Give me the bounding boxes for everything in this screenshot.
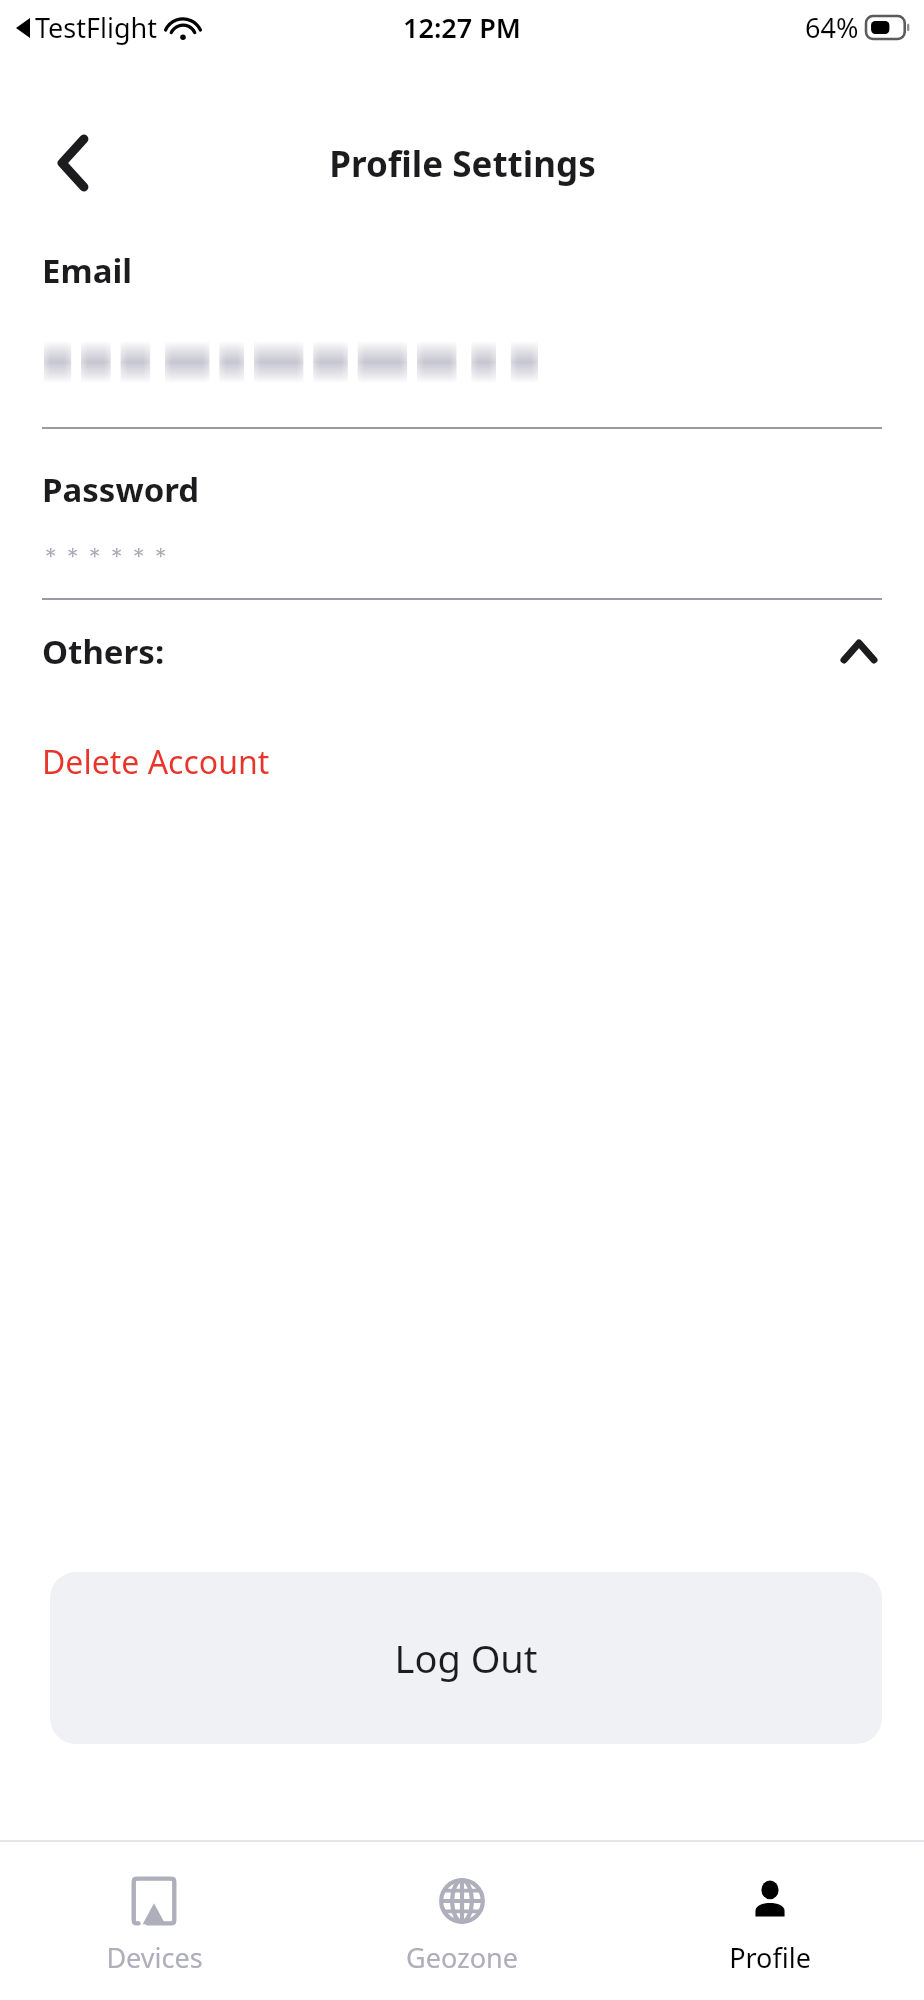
button[interactable]: Profile [616,1867,924,1976]
button[interactable]: Delete Account [0,736,290,788]
staticText: ＊＊＊＊＊＊ [40,542,172,570]
staticText: Profile [729,1939,811,1976]
staticText: Profile Settings [329,140,596,188]
other: Collapse [842,634,876,668]
button[interactable]: Geozone [308,1867,616,1976]
staticText: Password [42,467,200,512]
staticText: 12:27 PM [403,9,521,46]
staticText: 64% [805,9,859,46]
staticText: Delete Account [42,740,270,784]
button[interactable]: Devices [0,1867,308,1976]
button[interactable]: Log Out [50,1572,882,1744]
staticText: Others: [42,629,165,674]
staticText: Email [42,248,133,293]
staticText: Geozone [406,1939,518,1976]
button[interactable]: Back [38,128,108,198]
staticText: TestFlight [35,9,158,46]
staticText: Log Out [394,1632,538,1684]
button[interactable]: Others: [0,600,924,702]
staticText: Devices [106,1939,203,1976]
